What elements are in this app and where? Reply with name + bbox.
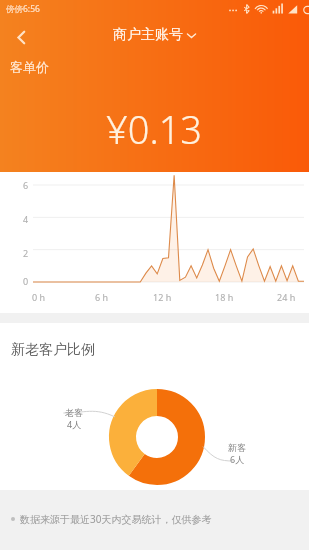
staticText: 商户主账号 [113, 26, 183, 44]
staticText: 2 [23, 247, 29, 259]
staticText: 4人 [67, 418, 82, 430]
staticText: 客单价 [10, 59, 49, 75]
staticText: 0 h [32, 291, 46, 303]
staticText: 数据来源于最近30天内交易统计，仅供参考 [20, 512, 212, 526]
staticText: 6人 [230, 453, 245, 465]
staticText: 老客 [65, 407, 83, 418]
staticText: 0 [23, 275, 29, 287]
staticText: 6 h [95, 291, 109, 303]
staticText: 傍傍6:56 [6, 3, 40, 15]
staticText: 4 [23, 213, 29, 225]
button[interactable]: 商户主账号 [113, 26, 197, 44]
staticText: 24 h [277, 291, 296, 303]
staticText: 18 h [215, 291, 234, 303]
staticText: 6 [23, 179, 29, 191]
staticText: 新客 [228, 442, 246, 453]
staticText: ¥0.13 [106, 103, 203, 155]
staticText: 新老客户比例 [11, 341, 95, 359]
button[interactable]: Back [4, 20, 38, 54]
staticText: 12 h [153, 291, 172, 303]
